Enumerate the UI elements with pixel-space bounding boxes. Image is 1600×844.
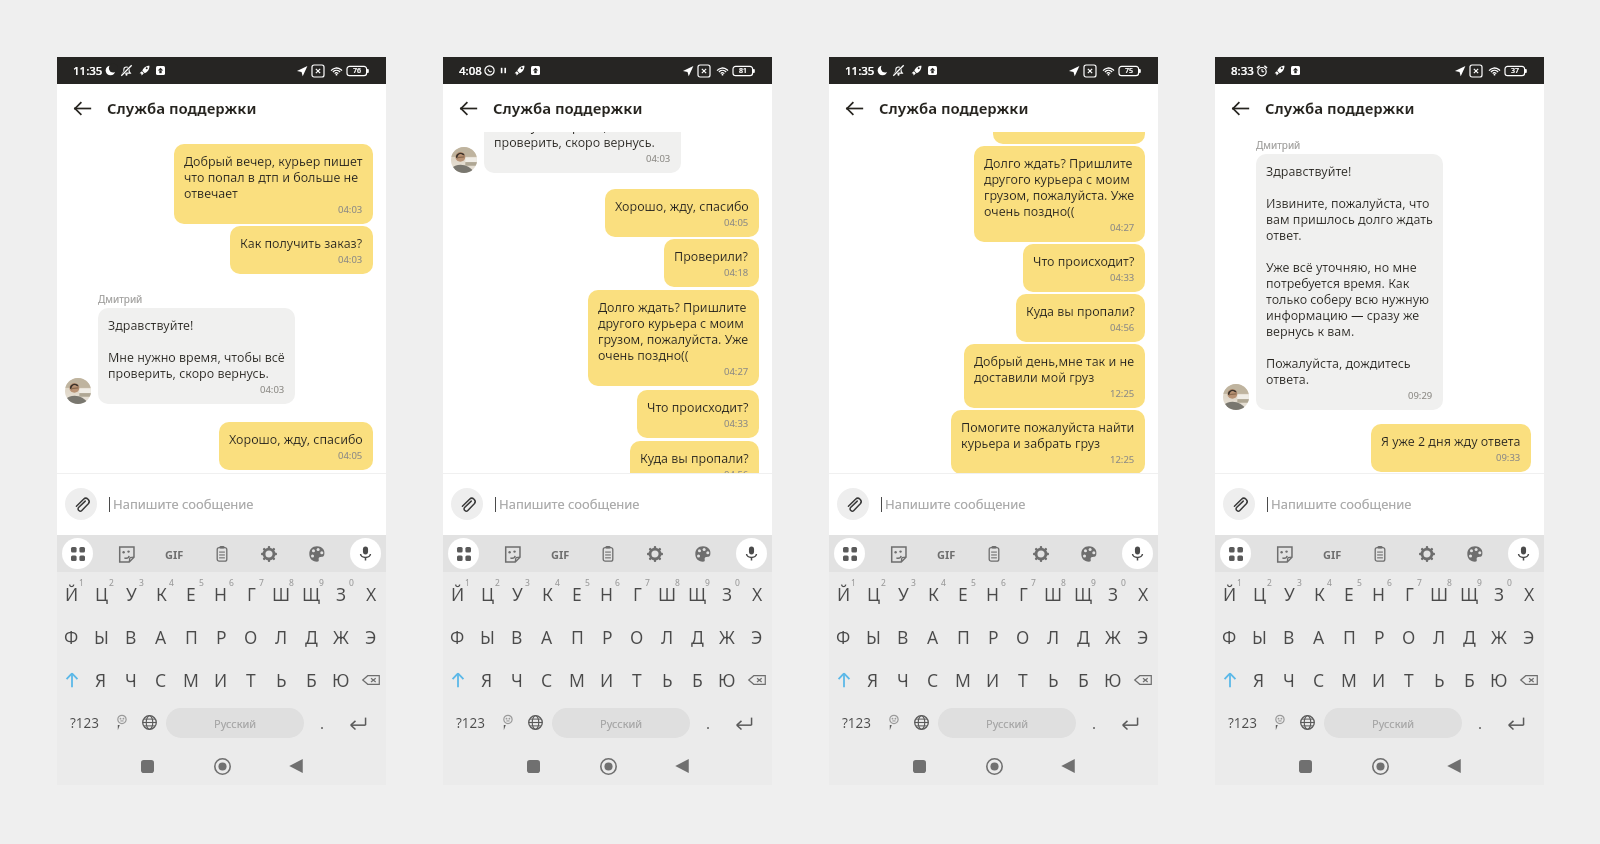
button[interactable]: А: [918, 615, 948, 658]
button[interactable]: Ь: [266, 658, 296, 701]
button[interactable]: GIF: [1317, 539, 1347, 569]
button[interactable]: Emoji: [493, 701, 521, 744]
button[interactable]: Й: [57, 572, 86, 615]
button[interactable]: Back: [1434, 745, 1474, 785]
button[interactable]: Б: [296, 658, 326, 701]
button[interactable]: С: [918, 658, 948, 701]
button[interactable]: Stickers: [883, 539, 913, 569]
button[interactable]: Change language: [907, 701, 935, 744]
button[interactable]: Themes: [302, 539, 332, 569]
button[interactable]: Back: [443, 84, 493, 132]
button[interactable]: Ж: [1098, 615, 1128, 658]
button[interactable]: Я: [858, 658, 888, 701]
button[interactable]: Change language: [1293, 701, 1321, 744]
button[interactable]: Shift: [57, 658, 86, 701]
button[interactable]: Д: [1454, 615, 1484, 658]
button[interactable]: У: [1274, 572, 1304, 615]
button[interactable]: Э: [356, 615, 386, 658]
button[interactable]: С: [146, 658, 176, 701]
button[interactable]: И: [1364, 658, 1394, 701]
button[interactable]: Г: [1394, 572, 1424, 615]
button[interactable]: Как получить заказ?: [230, 226, 373, 274]
button[interactable]: ?123: [834, 701, 879, 744]
button[interactable]: Ь: [652, 658, 682, 701]
button[interactable]: Shift: [1215, 658, 1244, 701]
button[interactable]: П: [948, 615, 978, 658]
button[interactable]: Settings: [1412, 539, 1442, 569]
button[interactable]: Е: [948, 572, 978, 615]
button[interactable]: Т: [236, 658, 266, 701]
button[interactable]: .: [1078, 701, 1111, 744]
button[interactable]: Themes: [1074, 539, 1104, 569]
button[interactable]: Settings: [254, 539, 284, 569]
button[interactable]: Щ: [296, 572, 326, 615]
button[interactable]: К: [146, 572, 176, 615]
button[interactable]: Backspace: [1514, 658, 1544, 701]
button[interactable]: Я: [472, 658, 502, 701]
button[interactable]: Ж: [712, 615, 742, 658]
button[interactable]: К: [1304, 572, 1334, 615]
button[interactable]: Русский: [552, 708, 690, 738]
button[interactable]: Ю: [712, 658, 742, 701]
button[interactable]: Ч: [1274, 658, 1304, 701]
button[interactable]: Recent apps: [127, 745, 167, 785]
button[interactable]: З: [712, 572, 742, 615]
button[interactable]: Б: [682, 658, 712, 701]
button[interactable]: О: [622, 615, 652, 658]
button[interactable]: Back: [57, 84, 107, 132]
button[interactable]: Здравствуйте!: [98, 308, 295, 404]
button[interactable]: З: [326, 572, 356, 615]
button[interactable]: Ц: [1244, 572, 1274, 615]
button[interactable]: Русский: [938, 708, 1076, 738]
button[interactable]: Ш: [1038, 572, 1068, 615]
button[interactable]: GIF: [931, 539, 961, 569]
button[interactable]: З: [1484, 572, 1514, 615]
button[interactable]: Г: [622, 572, 652, 615]
button[interactable]: Й: [443, 572, 472, 615]
button[interactable]: Русский: [1324, 708, 1462, 738]
button[interactable]: М: [176, 658, 206, 701]
button[interactable]: И: [592, 658, 622, 701]
button[interactable]: А: [146, 615, 176, 658]
button[interactable]: Ц: [86, 572, 116, 615]
button[interactable]: Shift: [443, 658, 472, 701]
button[interactable]: М: [948, 658, 978, 701]
button[interactable]: Е: [1334, 572, 1364, 615]
button[interactable]: У: [502, 572, 532, 615]
button[interactable]: И: [206, 658, 236, 701]
button[interactable]: Ч: [888, 658, 918, 701]
button[interactable]: Добрый вечер, курьер пишет: [174, 144, 373, 224]
button[interactable]: Ь: [1424, 658, 1454, 701]
button[interactable]: Е: [176, 572, 206, 615]
button[interactable]: Apps: [62, 538, 93, 569]
button[interactable]: Т: [622, 658, 652, 701]
button[interactable]: Voice input: [1122, 538, 1153, 569]
button[interactable]: Back: [1048, 745, 1088, 785]
button[interactable]: В: [1274, 615, 1304, 658]
button[interactable]: Clipboard: [1365, 539, 1395, 569]
button[interactable]: Recent apps: [1285, 745, 1325, 785]
button[interactable]: Е: [562, 572, 592, 615]
button[interactable]: П: [176, 615, 206, 658]
button[interactable]: Д: [1068, 615, 1098, 658]
button[interactable]: А: [532, 615, 562, 658]
button[interactable]: Добрый день,мне так и не: [964, 344, 1145, 408]
button[interactable]: Shift: [829, 658, 858, 701]
button[interactable]: П: [562, 615, 592, 658]
button[interactable]: Л: [266, 615, 296, 658]
button[interactable]: Л: [652, 615, 682, 658]
button[interactable]: Change language: [135, 701, 163, 744]
button[interactable]: Back: [1215, 84, 1265, 132]
button[interactable]: Что происходит?: [1023, 244, 1145, 292]
button[interactable]: Долго ждать? Пришлите: [974, 146, 1145, 242]
button[interactable]: Enter: [725, 701, 762, 744]
button[interactable]: GIF: [159, 539, 189, 569]
button[interactable]: У: [116, 572, 146, 615]
button[interactable]: ?123: [1220, 701, 1265, 744]
button[interactable]: П: [1334, 615, 1364, 658]
button[interactable]: Settings: [1026, 539, 1056, 569]
button[interactable]: Т: [1008, 658, 1038, 701]
button[interactable]: Н: [206, 572, 236, 615]
button[interactable]: Я уже 2 дня жду ответа: [1371, 424, 1531, 472]
button[interactable]: Ф: [57, 615, 86, 658]
